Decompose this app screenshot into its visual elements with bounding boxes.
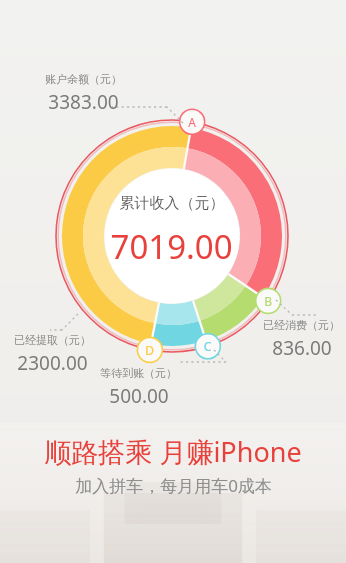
staticText: 顺路搭乘 月赚iPhone [44,433,302,470]
button[interactable]: 已经提取（元） [14,333,91,376]
staticText: 836.00 [272,335,332,361]
button[interactable]: 顺路搭乘 月赚iPhone [0,423,346,563]
button[interactable]: 账户余额（元） [45,72,122,115]
staticText: 加入拼车，每月用车0成本 [75,474,272,497]
button[interactable]: Earnings breakdown chart [0,0,346,420]
staticText: 3383.00 [48,89,119,115]
staticText: 已经提取（元） [14,333,91,347]
button[interactable]: 等待到账（元） [100,366,177,409]
staticText: 500.00 [109,383,169,409]
staticText: 等待到账（元） [100,366,177,380]
staticText: 2300.00 [17,350,88,376]
staticText: 已经消费（元） [263,318,340,332]
staticText: 账户余额（元） [45,72,122,86]
button[interactable]: 已经消费（元） [263,318,340,361]
